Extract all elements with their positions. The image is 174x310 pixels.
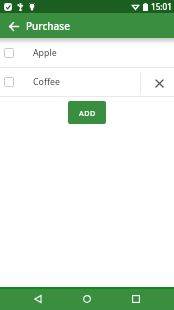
staticText: Purchase xyxy=(26,19,70,33)
button[interactable]: Recent apps xyxy=(125,288,147,310)
staticText: Coffee xyxy=(33,76,60,88)
button[interactable]: Apple xyxy=(0,39,174,67)
button[interactable]: Back xyxy=(27,288,49,310)
staticText: ADD xyxy=(79,108,96,118)
button[interactable]: Back xyxy=(0,13,28,38)
staticText: Apple xyxy=(33,47,57,59)
button[interactable]: Coffee xyxy=(0,68,174,96)
staticText: 15:01 xyxy=(151,1,172,12)
button[interactable]: ADD xyxy=(68,101,106,124)
button[interactable]: Home xyxy=(76,288,98,310)
button[interactable]: Remove xyxy=(141,68,174,96)
